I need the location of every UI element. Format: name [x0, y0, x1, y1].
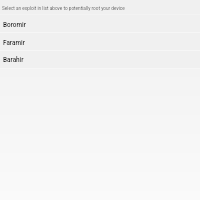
button[interactable]: Boromir — [0, 15, 200, 32]
staticText: Barahir — [3, 56, 24, 64]
staticText: Faramir — [3, 39, 25, 47]
button[interactable]: Faramir — [0, 33, 200, 50]
staticText: Boromir — [3, 21, 26, 29]
staticText: Select an exploit in list above to poten… — [2, 6, 125, 12]
button[interactable]: Barahir — [0, 51, 200, 68]
